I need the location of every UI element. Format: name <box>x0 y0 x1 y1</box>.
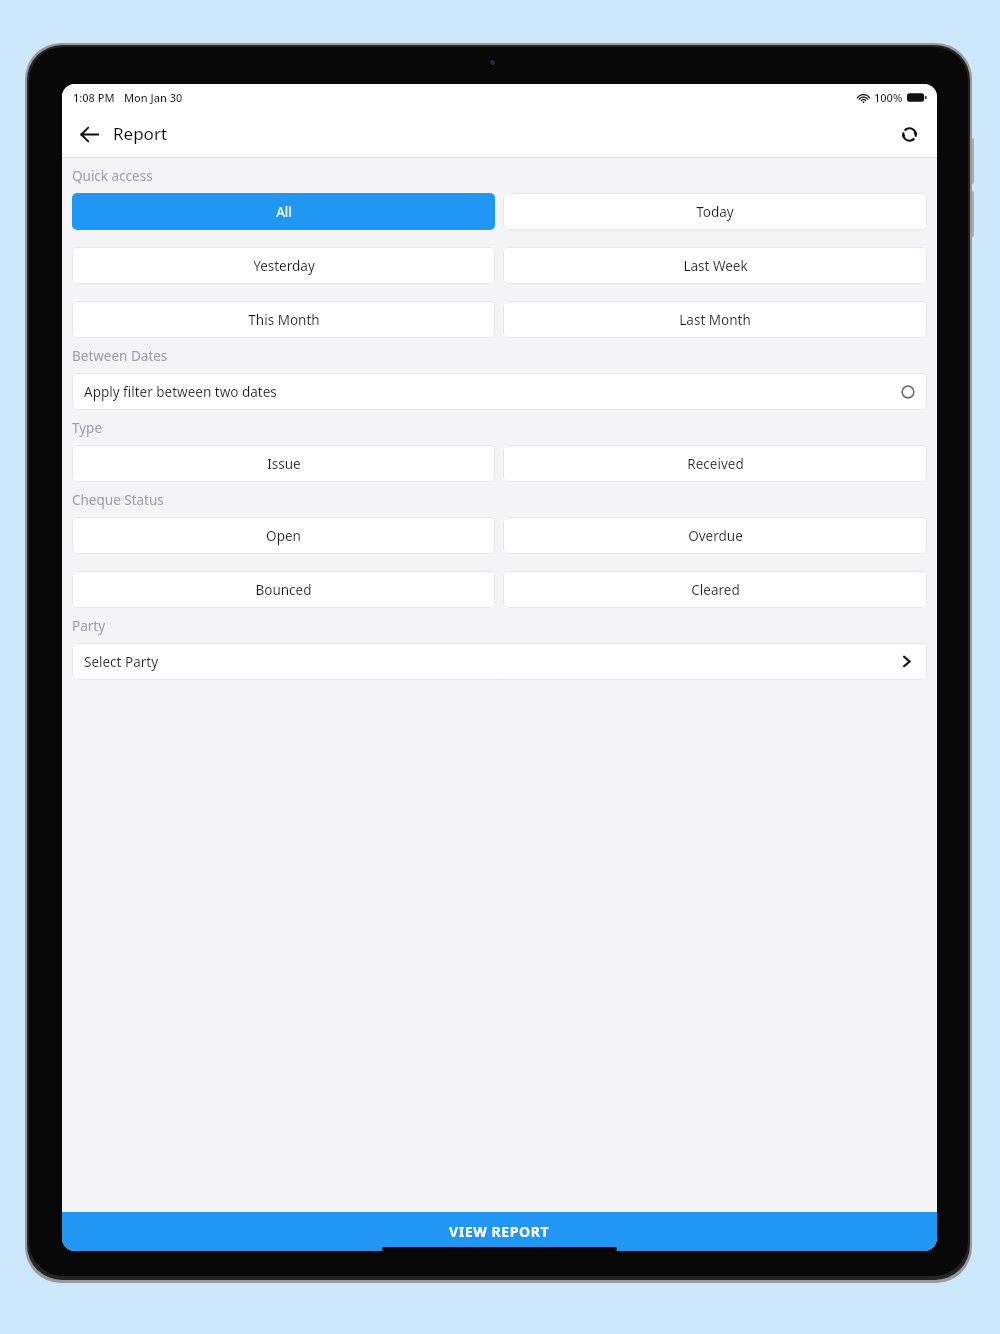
button[interactable]: Open <box>72 517 495 554</box>
staticText: Received <box>687 455 744 473</box>
staticText: 1:08 PM <box>73 90 115 105</box>
button[interactable]: This Month <box>72 301 495 338</box>
staticText: Apply filter between two dates <box>84 383 277 401</box>
staticText: Cheque Status <box>72 491 164 509</box>
staticText: Last Week <box>683 257 748 275</box>
staticText: Open <box>266 527 301 545</box>
staticText: Quick access <box>72 167 153 185</box>
staticText: Type <box>72 419 103 437</box>
button[interactable]: Received <box>503 445 927 482</box>
staticText: 100% <box>874 90 903 105</box>
button[interactable]: Apply filter between two dates <box>72 373 927 410</box>
button[interactable]: Last Month <box>503 301 927 338</box>
staticText: Issue <box>267 455 301 473</box>
button[interactable]: Back <box>68 113 110 155</box>
button[interactable]: Last Week <box>503 247 927 284</box>
staticText: Overdue <box>688 527 743 545</box>
button[interactable]: Cleared <box>503 571 927 608</box>
button[interactable]: Overdue <box>503 517 927 554</box>
staticText: Today <box>696 203 734 221</box>
button[interactable]: All <box>72 193 495 230</box>
staticText: Yesterday <box>253 257 315 275</box>
button[interactable]: Yesterday <box>72 247 495 284</box>
staticText: Last Month <box>679 311 751 329</box>
button[interactable]: Today <box>503 193 927 230</box>
staticText: Party <box>72 617 106 635</box>
staticText: All <box>276 203 292 221</box>
staticText: Mon Jan 30 <box>124 90 183 105</box>
button[interactable]: Issue <box>72 445 495 482</box>
button[interactable]: VIEW REPORT <box>62 1212 937 1251</box>
button[interactable]: Select Party <box>72 643 927 680</box>
staticText: Cleared <box>691 581 740 599</box>
staticText: Between Dates <box>72 347 168 365</box>
staticText: Select Party <box>84 653 159 671</box>
button[interactable]: Bounced <box>72 571 495 608</box>
staticText: Report <box>113 122 168 145</box>
staticText: VIEW REPORT <box>449 1222 550 1241</box>
staticText: Bounced <box>255 581 312 599</box>
button[interactable]: Refresh <box>889 114 929 154</box>
staticText: This Month <box>248 311 320 329</box>
